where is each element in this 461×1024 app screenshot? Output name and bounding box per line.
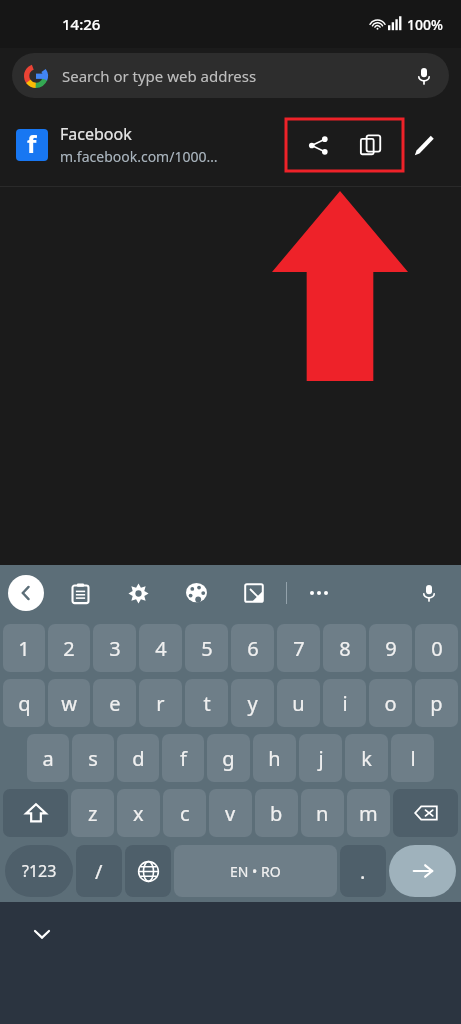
staticText: s: [88, 745, 98, 772]
button[interactable]: /: [76, 845, 122, 897]
button[interactable]: Resize: [236, 575, 272, 611]
staticText: 7: [293, 635, 305, 662]
button[interactable]: z: [71, 789, 114, 837]
button[interactable]: b: [255, 789, 298, 837]
staticText: f: [180, 745, 187, 772]
button[interactable]: Change language: [125, 845, 171, 897]
staticText: Search or type web address: [62, 66, 403, 86]
staticText: e: [109, 690, 121, 717]
button[interactable]: y: [231, 679, 274, 727]
button[interactable]: a: [27, 734, 69, 782]
button[interactable]: m: [347, 789, 390, 837]
button[interactable]: w: [48, 679, 90, 727]
staticText: r: [156, 690, 165, 717]
staticText: f: [27, 129, 37, 159]
staticText: t: [203, 690, 211, 717]
button[interactable]: k: [345, 734, 388, 782]
staticText: u: [292, 690, 305, 717]
staticText: 100%: [407, 15, 443, 34]
button[interactable]: Go: [389, 845, 456, 897]
staticText: k: [361, 745, 372, 772]
button[interactable]: Settings: [120, 575, 156, 611]
staticText: i: [342, 690, 348, 717]
staticText: 3: [109, 635, 121, 662]
staticText: 1: [18, 635, 30, 662]
staticText: 4: [155, 635, 167, 662]
button[interactable]: 9: [369, 624, 412, 672]
staticText: y: [247, 690, 258, 717]
staticText: h: [268, 745, 281, 772]
button[interactable]: More options: [301, 575, 337, 611]
button[interactable]: t: [185, 679, 228, 727]
button[interactable]: l: [391, 734, 434, 782]
staticText: d: [132, 745, 145, 772]
staticText: 0: [431, 635, 443, 662]
button[interactable]: .: [340, 845, 386, 897]
staticText: 8: [339, 635, 351, 662]
staticText: 6: [247, 635, 259, 662]
button[interactable]: Voice input: [411, 575, 447, 611]
button[interactable]: u: [277, 679, 320, 727]
button[interactable]: q: [3, 679, 45, 727]
button[interactable]: EN • RO: [174, 845, 337, 897]
staticText: 14:26: [62, 14, 101, 34]
staticText: l: [410, 745, 416, 772]
button[interactable]: 3: [93, 624, 136, 672]
staticText: a: [42, 745, 54, 772]
button[interactable]: Share: [298, 125, 338, 165]
button[interactable]: 0: [415, 624, 458, 672]
staticText: x: [133, 800, 144, 827]
button[interactable]: c: [163, 789, 206, 837]
button[interactable]: h: [253, 734, 296, 782]
staticText: m.facebook.com/1000…: [60, 147, 218, 166]
staticText: .: [360, 858, 366, 885]
button[interactable]: v: [209, 789, 252, 837]
staticText: /: [95, 858, 103, 885]
staticText: g: [222, 745, 235, 772]
button[interactable]: p: [415, 679, 458, 727]
staticText: 9: [385, 635, 397, 662]
button[interactable]: Back: [8, 575, 44, 611]
button[interactable]: 1: [3, 624, 45, 672]
staticText: 2: [63, 635, 75, 662]
button[interactable]: r: [139, 679, 182, 727]
button[interactable]: Backspace: [393, 789, 458, 837]
button[interactable]: n: [301, 789, 344, 837]
button[interactable]: Voice search: [411, 63, 437, 89]
button[interactable]: 7: [277, 624, 320, 672]
staticText: v: [225, 800, 236, 827]
staticText: j: [318, 745, 324, 772]
button[interactable]: f: [162, 734, 204, 782]
staticText: w: [61, 690, 77, 717]
button[interactable]: 5: [185, 624, 228, 672]
button[interactable]: 6: [231, 624, 274, 672]
staticText: c: [180, 800, 190, 827]
button[interactable]: s: [72, 734, 114, 782]
staticText: EN • RO: [230, 862, 281, 881]
button[interactable]: j: [299, 734, 342, 782]
button[interactable]: Copy: [351, 125, 391, 165]
staticText: ?123: [22, 860, 57, 882]
button[interactable]: x: [117, 789, 160, 837]
button[interactable]: 8: [323, 624, 366, 672]
button[interactable]: Edit: [403, 124, 445, 166]
button[interactable]: 2: [48, 624, 90, 672]
staticText: z: [88, 800, 98, 827]
button[interactable]: g: [207, 734, 250, 782]
button[interactable]: e: [93, 679, 136, 727]
button[interactable]: Clipboard: [62, 575, 98, 611]
button[interactable]: i: [323, 679, 366, 727]
button[interactable]: Theme: [178, 575, 214, 611]
button[interactable]: Search or type web address: [12, 53, 449, 98]
staticText: q: [18, 690, 31, 717]
staticText: m: [359, 800, 378, 827]
button[interactable]: ?123: [5, 845, 73, 897]
button[interactable]: 4: [139, 624, 182, 672]
staticText: Facebook: [60, 123, 132, 145]
staticText: b: [270, 800, 283, 827]
staticText: n: [316, 800, 329, 827]
button[interactable]: d: [117, 734, 159, 782]
other: Hide keyboard: [32, 924, 52, 944]
button[interactable]: o: [369, 679, 412, 727]
button[interactable]: Shift: [3, 789, 68, 837]
